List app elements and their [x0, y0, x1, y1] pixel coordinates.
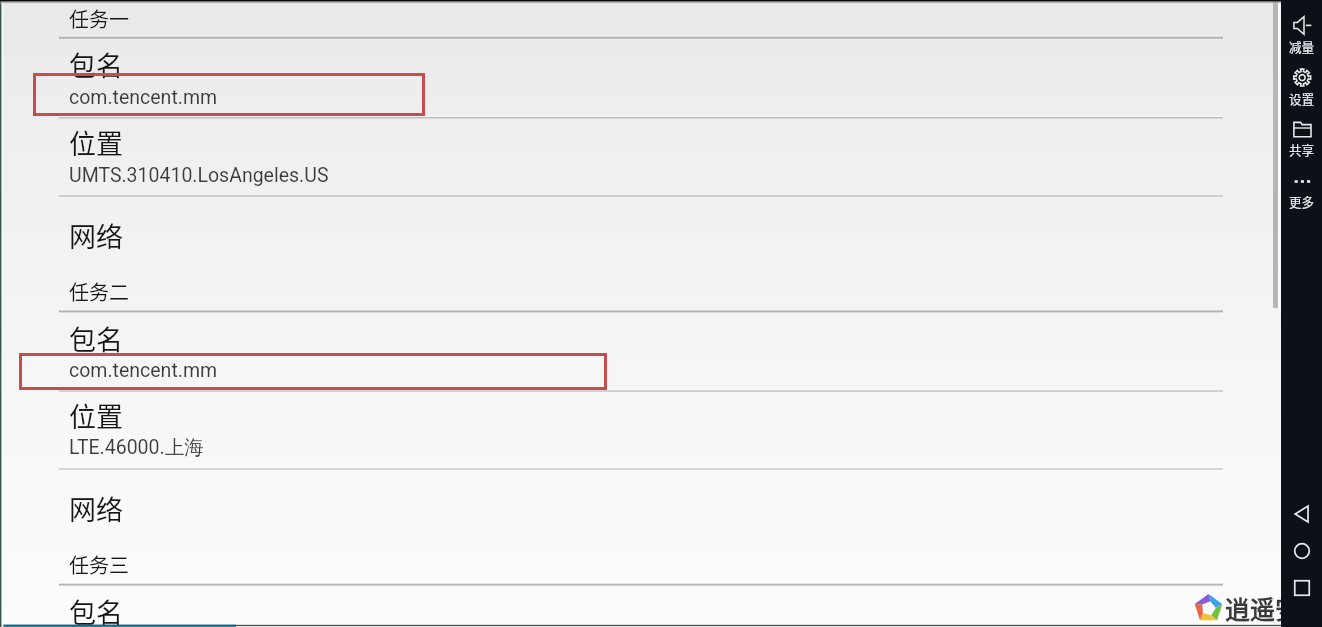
- staticText: 包名: [69, 45, 123, 84]
- button[interactable]: Back: [1285, 497, 1319, 531]
- staticText: 包名: [69, 592, 123, 627]
- button[interactable]: 更多: [1281, 168, 1322, 214]
- button[interactable]: 包名: [0, 39, 1281, 117]
- staticText: 减量: [1281, 37, 1322, 55]
- staticText: 网络: [69, 489, 123, 528]
- staticText: 包名: [69, 319, 123, 358]
- staticText: UMTS.310410.LosAngeles.US: [69, 164, 329, 187]
- button[interactable]: 位置: [0, 392, 1281, 468]
- button[interactable]: Home: [1285, 534, 1319, 568]
- staticText: LTE.46000.上海: [69, 435, 204, 460]
- button[interactable]: 共享: [1281, 116, 1322, 162]
- button[interactable]: 包名: [0, 586, 1281, 627]
- staticText: 共享: [1281, 140, 1322, 158]
- staticText: 逍遥安卓: [1225, 590, 1322, 626]
- button[interactable]: 网络: [0, 197, 1281, 270]
- staticText: 任务一: [69, 4, 129, 33]
- button[interactable]: 设置: [1281, 64, 1322, 110]
- staticText: com.tencent.mm: [69, 86, 218, 109]
- staticText: com.tencent.mm: [69, 359, 218, 382]
- button[interactable]: 位置: [0, 119, 1281, 196]
- button[interactable]: 网络: [0, 470, 1281, 543]
- staticText: 任务三: [69, 550, 129, 579]
- button[interactable]: 包名: [0, 312, 1281, 390]
- staticText: 更多: [1281, 192, 1322, 210]
- staticText: 任务二: [69, 277, 129, 306]
- button[interactable]: Recents: [1285, 571, 1319, 605]
- staticText: 位置: [69, 396, 123, 435]
- button[interactable]: 减量: [1281, 12, 1322, 58]
- staticText: 设置: [1281, 89, 1322, 107]
- staticText: 位置: [69, 123, 123, 162]
- staticText: 网络: [69, 216, 123, 255]
